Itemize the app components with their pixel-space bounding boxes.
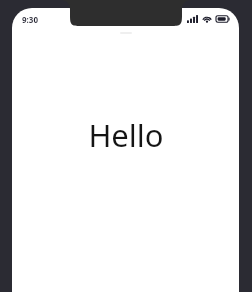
other: Wi-Fi connected bbox=[202, 15, 212, 23]
button[interactable]: Hello bbox=[88, 114, 164, 156]
other: Cellular signal strength bbox=[187, 15, 198, 23]
other: Battery level bbox=[216, 15, 230, 23]
staticText: 9:30 bbox=[22, 14, 38, 25]
